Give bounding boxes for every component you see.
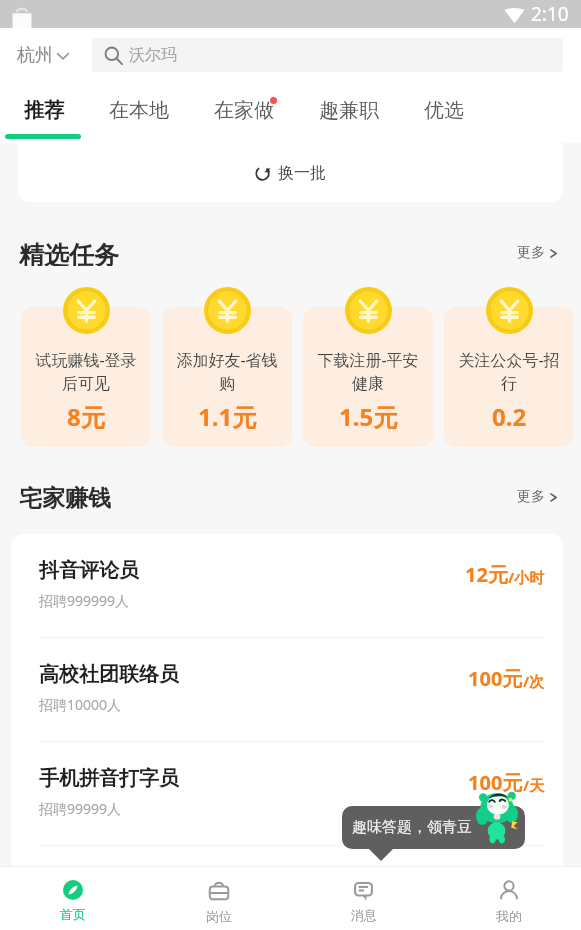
staticText: 优选	[424, 98, 464, 123]
staticText: 招聘10000人	[39, 695, 122, 714]
staticText: 更多	[517, 244, 545, 262]
button[interactable]: 换一批	[18, 143, 563, 202]
staticText: 我的	[496, 908, 522, 924]
staticText: 推荐	[24, 98, 64, 123]
button[interactable]: 抖音评论员	[11, 534, 563, 638]
staticText: 宅家赚钱	[19, 484, 111, 510]
staticText: 1.1元	[198, 400, 257, 433]
staticText: 下载注册-平安健康	[314, 349, 422, 394]
staticText: 更多	[517, 488, 545, 506]
staticText: 添加好友-省钱购	[173, 349, 281, 394]
button[interactable]: 关注公众号-招行	[444, 307, 574, 447]
button[interactable]: 试玩赚钱-登录后可见	[21, 307, 151, 447]
staticText: 8元	[67, 400, 105, 433]
button[interactable]: 添加好友-省钱购	[162, 307, 292, 447]
staticText: /小时	[508, 567, 545, 587]
button[interactable]: 优选	[424, 78, 464, 143]
button[interactable]: 更多	[507, 240, 581, 266]
button[interactable]: 趣味答题，领青豆	[342, 806, 525, 849]
other: 岗位	[208, 880, 230, 902]
button[interactable]: 推荐	[24, 78, 64, 143]
staticText: 趣兼职	[319, 98, 379, 123]
staticText: 手机拼音打字员	[39, 766, 179, 791]
staticText: 抖音评论员	[39, 558, 139, 583]
staticText: /次	[523, 671, 545, 691]
staticText: 100元	[468, 769, 523, 796]
staticText: 沃尔玛	[129, 45, 177, 65]
staticText: 趣味答题，领青豆	[352, 818, 472, 837]
button[interactable]: 在本地	[109, 78, 169, 143]
button[interactable]: 消息	[291, 867, 436, 930]
other: 青豆吉祥物	[476, 791, 518, 845]
button[interactable]: 下载注册-平安健康	[303, 307, 433, 447]
button[interactable]: 手机拼音打字员	[11, 742, 563, 846]
button[interactable]: 杭州	[0, 38, 92, 73]
staticText: 在家做	[214, 98, 274, 123]
staticText: 0.2	[492, 400, 527, 433]
staticText: 1.5元	[339, 400, 398, 433]
button[interactable]: 首页	[0, 867, 146, 930]
other: 消息	[353, 880, 374, 901]
staticText: 100元	[468, 665, 523, 692]
button[interactable]: 沃尔玛	[92, 38, 563, 72]
staticText: 在本地	[109, 98, 169, 123]
other: 我的	[498, 880, 520, 902]
staticText: 消息	[351, 907, 377, 923]
staticText: 2:10	[531, 1, 569, 27]
button[interactable]: 岗位	[146, 867, 291, 930]
staticText: 换一批	[278, 163, 326, 183]
staticText: 试玩赚钱-登录后可见	[32, 349, 140, 394]
other: 首页	[63, 880, 83, 900]
button[interactable]: 在家做	[214, 78, 274, 143]
staticText: 杭州	[17, 44, 53, 67]
staticText: 招聘999999人	[39, 591, 130, 610]
button[interactable]: 我的	[436, 867, 581, 930]
staticText: 岗位	[206, 908, 232, 924]
staticText: 12元	[465, 561, 508, 588]
staticText: 精选任务	[19, 240, 119, 266]
button[interactable]: 趣兼职	[319, 78, 379, 143]
staticText: 招聘99999人	[39, 799, 122, 818]
staticText: 关注公众号-招行	[455, 349, 563, 394]
button[interactable]: 高校社团联络员	[11, 638, 563, 742]
staticText: 首页	[60, 906, 86, 922]
staticText: 高校社团联络员	[39, 662, 179, 687]
button[interactable]: 更多	[507, 484, 581, 510]
staticText: /天	[523, 775, 545, 795]
